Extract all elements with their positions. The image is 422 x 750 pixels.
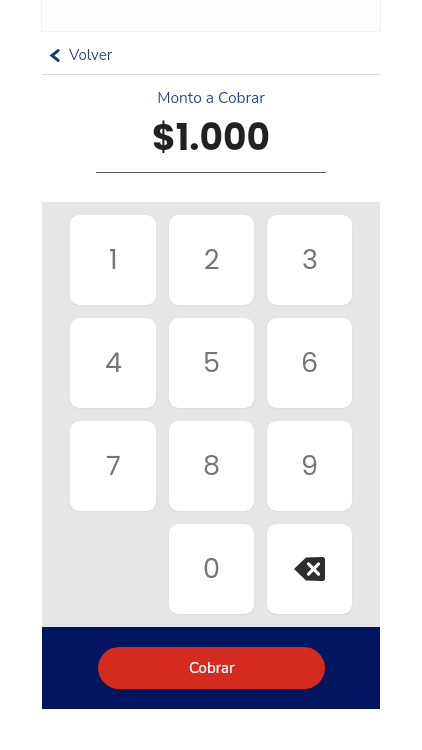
staticText: 3 [302, 241, 318, 279]
staticText: Cobrar [189, 658, 235, 678]
button[interactable]: Cobrar [98, 647, 325, 689]
staticText: 2 [204, 241, 220, 279]
staticText: 0 [203, 550, 220, 588]
staticText: 4 [105, 344, 122, 382]
button[interactable]: Borrar [267, 524, 352, 614]
button[interactable]: 1 [70, 215, 156, 305]
button[interactable]: Volver [47, 44, 113, 66]
staticText: 1 [109, 241, 118, 279]
staticText: Volver [69, 45, 113, 65]
button[interactable]: 8 [169, 421, 254, 511]
button[interactable]: 2 [169, 215, 254, 305]
staticText: $1.000 [0, 112, 422, 162]
button[interactable]: 4 [70, 318, 156, 408]
button[interactable]: 6 [267, 318, 352, 408]
staticText: 6 [301, 344, 319, 382]
staticText: 5 [203, 344, 220, 382]
staticText: 9 [301, 447, 319, 485]
staticText: 7 [106, 447, 121, 485]
button[interactable]: 5 [169, 318, 254, 408]
button[interactable]: 7 [70, 421, 156, 511]
staticText: 8 [203, 447, 221, 485]
button[interactable]: 9 [267, 421, 352, 511]
button[interactable]: 0 [169, 524, 254, 614]
button[interactable]: 3 [267, 215, 352, 305]
staticText: Monto a Cobrar [0, 87, 422, 108]
